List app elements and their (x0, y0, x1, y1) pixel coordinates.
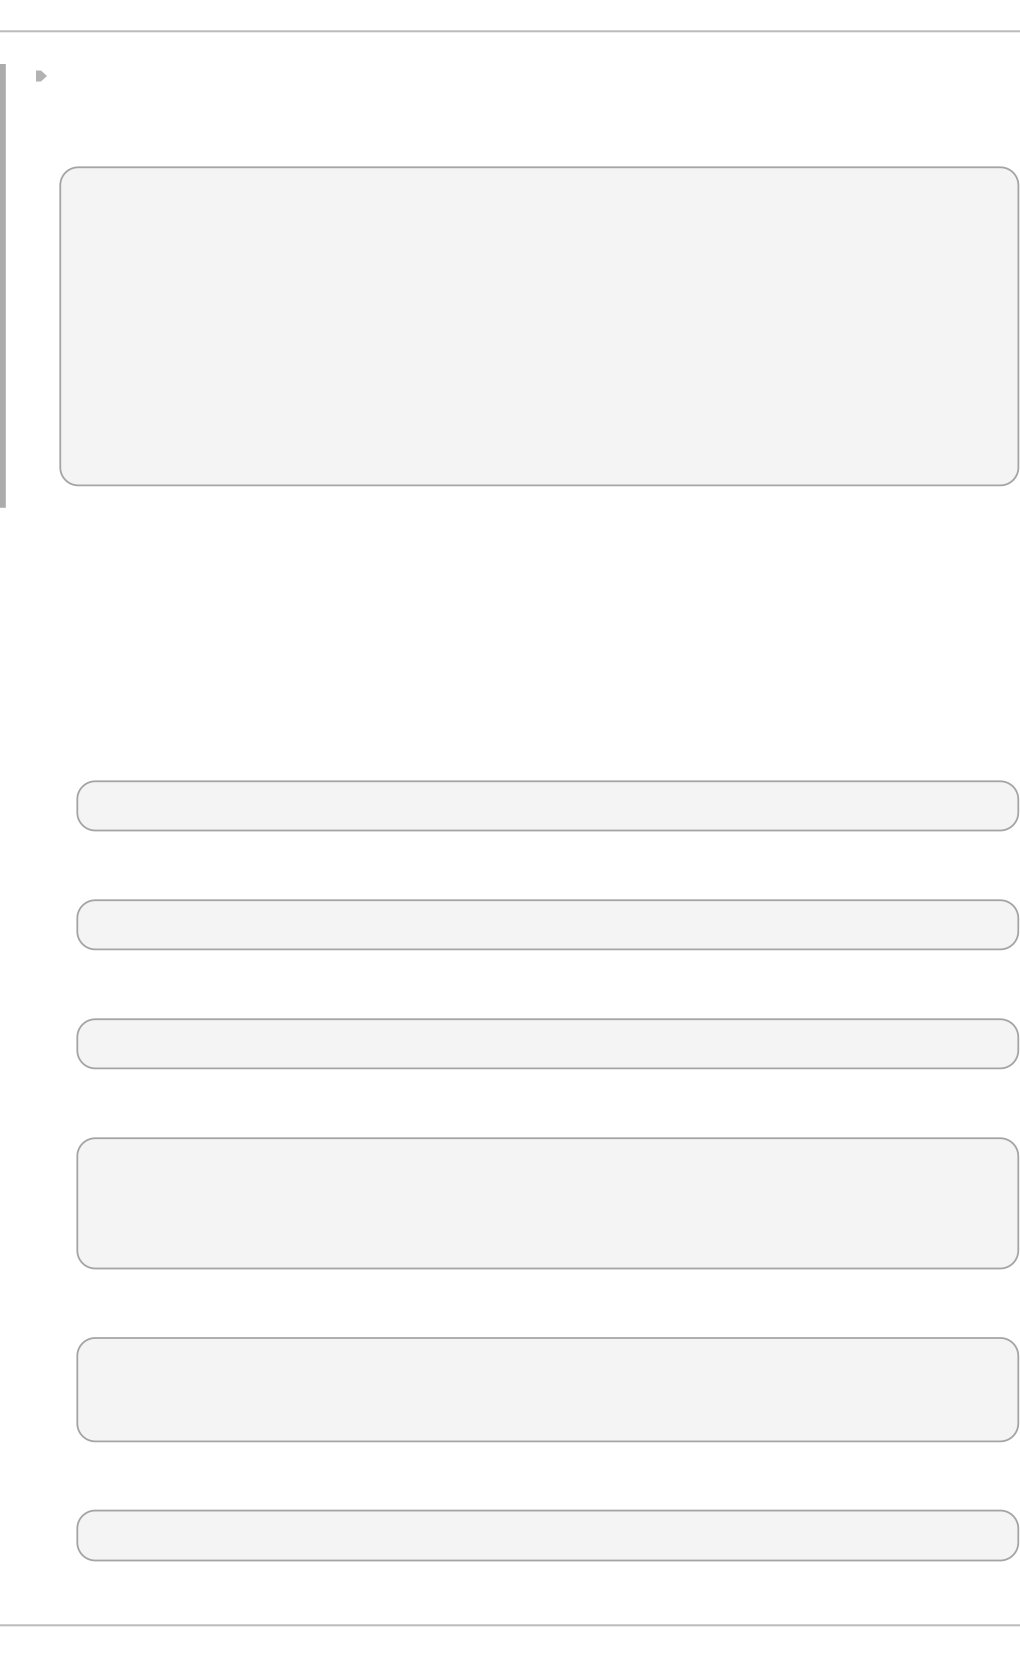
button[interactable]: Item 6 (77, 1510, 1018, 1560)
button[interactable]: Item 4 (77, 1138, 1018, 1268)
button[interactable]: Item 3 (77, 1019, 1018, 1068)
button[interactable]: Item 1 (77, 781, 1018, 830)
button[interactable]: Item 2 (77, 900, 1018, 949)
button[interactable]: Item 5 (77, 1338, 1018, 1441)
button[interactable]: Disclosure (36, 70, 47, 81)
button[interactable]: Featured (60, 167, 1018, 485)
